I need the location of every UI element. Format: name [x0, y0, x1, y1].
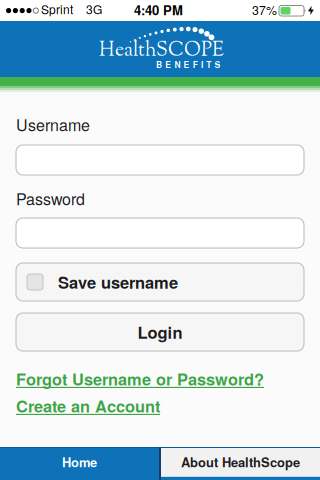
staticText: Create an Account [16, 394, 160, 417]
staticText: Login [137, 320, 182, 344]
staticText: Username [16, 113, 90, 136]
staticText: B E N E F I T S [156, 58, 220, 71]
button[interactable]: Forgot Username or Password? [16, 367, 264, 390]
staticText: Password [16, 187, 85, 210]
staticText: Forgot Username or Password? [16, 367, 264, 390]
staticText: About HealthScope [181, 453, 300, 471]
staticText: Home [62, 453, 97, 471]
staticText: 37% [252, 1, 277, 18]
staticText: HealthSCOPE [99, 37, 224, 65]
staticText: 3G [86, 0, 102, 18]
button[interactable]: Login [16, 313, 304, 351]
staticText: 4:40 PM [134, 1, 183, 19]
staticText: Save username [58, 270, 178, 294]
button[interactable]: Home [0, 448, 159, 476]
button[interactable]: About HealthScope [161, 448, 320, 476]
button[interactable]: Save username [16, 263, 304, 301]
staticText: Sprint [41, 0, 73, 18]
button[interactable]: Create an Account [16, 394, 160, 417]
